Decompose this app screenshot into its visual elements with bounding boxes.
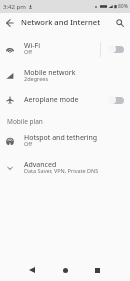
staticText: Off bbox=[24, 48, 33, 55]
button[interactable]: Advanced bbox=[0, 155, 130, 181]
staticText: Advanced bbox=[24, 160, 57, 170]
button[interactable]: Back bbox=[22, 260, 42, 280]
button[interactable]: Toggle bbox=[108, 95, 124, 105]
button[interactable]: Recents bbox=[87, 260, 107, 280]
button[interactable]: Toggle bbox=[108, 44, 124, 54]
button[interactable]: Home bbox=[55, 260, 75, 280]
button[interactable]: Aeroplane mode bbox=[0, 87, 130, 113]
staticText: Hotspot and tethering bbox=[24, 133, 98, 143]
staticText: Off bbox=[24, 140, 33, 147]
staticText: Aeroplane mode bbox=[24, 95, 79, 105]
staticText: Network and Internet bbox=[21, 17, 101, 27]
button[interactable]: Search bbox=[112, 15, 128, 31]
staticText: 2degrees bbox=[24, 75, 49, 82]
button[interactable]: Back bbox=[2, 15, 18, 31]
staticText: Data Saver, VPN, Private DNS bbox=[24, 167, 99, 174]
button[interactable]: Hotspot and tethering bbox=[0, 128, 130, 154]
staticText: 80% bbox=[118, 3, 128, 10]
button[interactable]: Wi-Fi bbox=[0, 36, 130, 62]
staticText: Mobile plan bbox=[7, 117, 43, 126]
staticText: Mobile network bbox=[24, 68, 76, 78]
button[interactable]: Mobile network bbox=[0, 63, 130, 89]
staticText: 3:42 pm bbox=[3, 3, 26, 11]
staticText: Wi-Fi bbox=[24, 41, 41, 51]
